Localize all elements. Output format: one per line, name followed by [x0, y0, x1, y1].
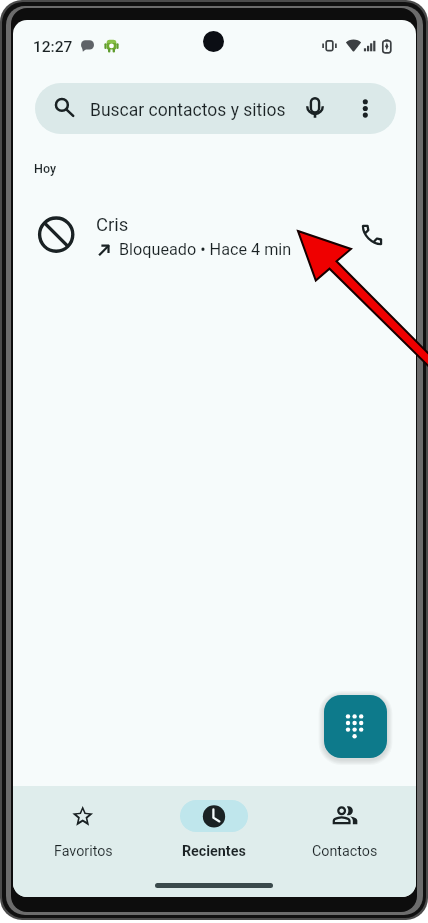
button[interactable]: Buscar contactos y sitios: [35, 83, 396, 134]
staticText: Bloqueado • Hace 4 min: [119, 240, 292, 259]
staticText: Buscar contactos y sitios: [90, 100, 286, 121]
button[interactable]: Contactos: [281, 796, 409, 876]
button[interactable]: Cris: [13, 199, 416, 271]
button[interactable]: Llamar: [350, 213, 394, 257]
staticText: Hoy: [34, 161, 56, 176]
staticText: Cris: [96, 214, 129, 236]
button[interactable]: Favoritos: [19, 796, 147, 876]
staticText: Contactos: [312, 843, 378, 860]
button[interactable]: Recientes: [150, 796, 278, 876]
staticText: Favoritos: [54, 843, 113, 860]
staticText: Recientes: [182, 843, 246, 860]
button[interactable]: Teclado: [324, 695, 387, 758]
staticText: 12:27: [33, 38, 73, 56]
